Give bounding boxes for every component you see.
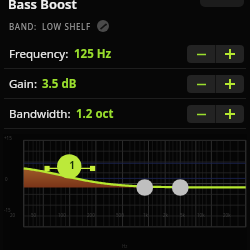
button[interactable]: Decrease Bandwidth:: [187, 105, 215, 123]
button[interactable]: Decrease Frequency:: [187, 45, 215, 63]
staticText: 3.5 dB: [42, 76, 187, 92]
staticText: 500: [116, 212, 247, 218]
staticText: 20k: [223, 212, 247, 218]
button[interactable]: Increase Frequency:: [216, 45, 244, 63]
button[interactable]: Decrease Gain:: [187, 75, 215, 93]
staticText: 100: [58, 212, 247, 218]
staticText: 125 Hz: [74, 46, 187, 62]
button[interactable]: Increase Bandwidth:: [216, 105, 244, 123]
staticText: 10k: [197, 212, 247, 218]
staticText: 200: [87, 212, 247, 218]
staticText: 20: [10, 212, 247, 218]
staticText: +15: [4, 135, 12, 141]
staticText: Hz: [122, 243, 128, 249]
button[interactable]: Band type: [97, 20, 109, 32]
button[interactable]: Increase Gain:: [216, 75, 244, 93]
staticText: 1k: [143, 212, 247, 218]
staticText: Bass Boost: [8, 0, 77, 11]
staticText: 5k: [180, 212, 247, 218]
staticText: -15: [4, 207, 11, 213]
staticText: Frequency:: [9, 46, 69, 62]
staticText: Gain:: [9, 76, 37, 92]
staticText: 1: [69, 158, 75, 172]
staticText: 2k: [163, 212, 247, 218]
staticText: Bandwidth:: [9, 106, 71, 122]
staticText: 0: [5, 176, 8, 182]
button[interactable]: Preset: [200, 0, 244, 7]
staticText: 50: [31, 212, 247, 218]
button[interactable]: Equalizer curve: [3, 134, 247, 250]
staticText: BAND: LOW SHELF: [9, 21, 91, 32]
staticText: 1.2 oct: [76, 106, 187, 122]
